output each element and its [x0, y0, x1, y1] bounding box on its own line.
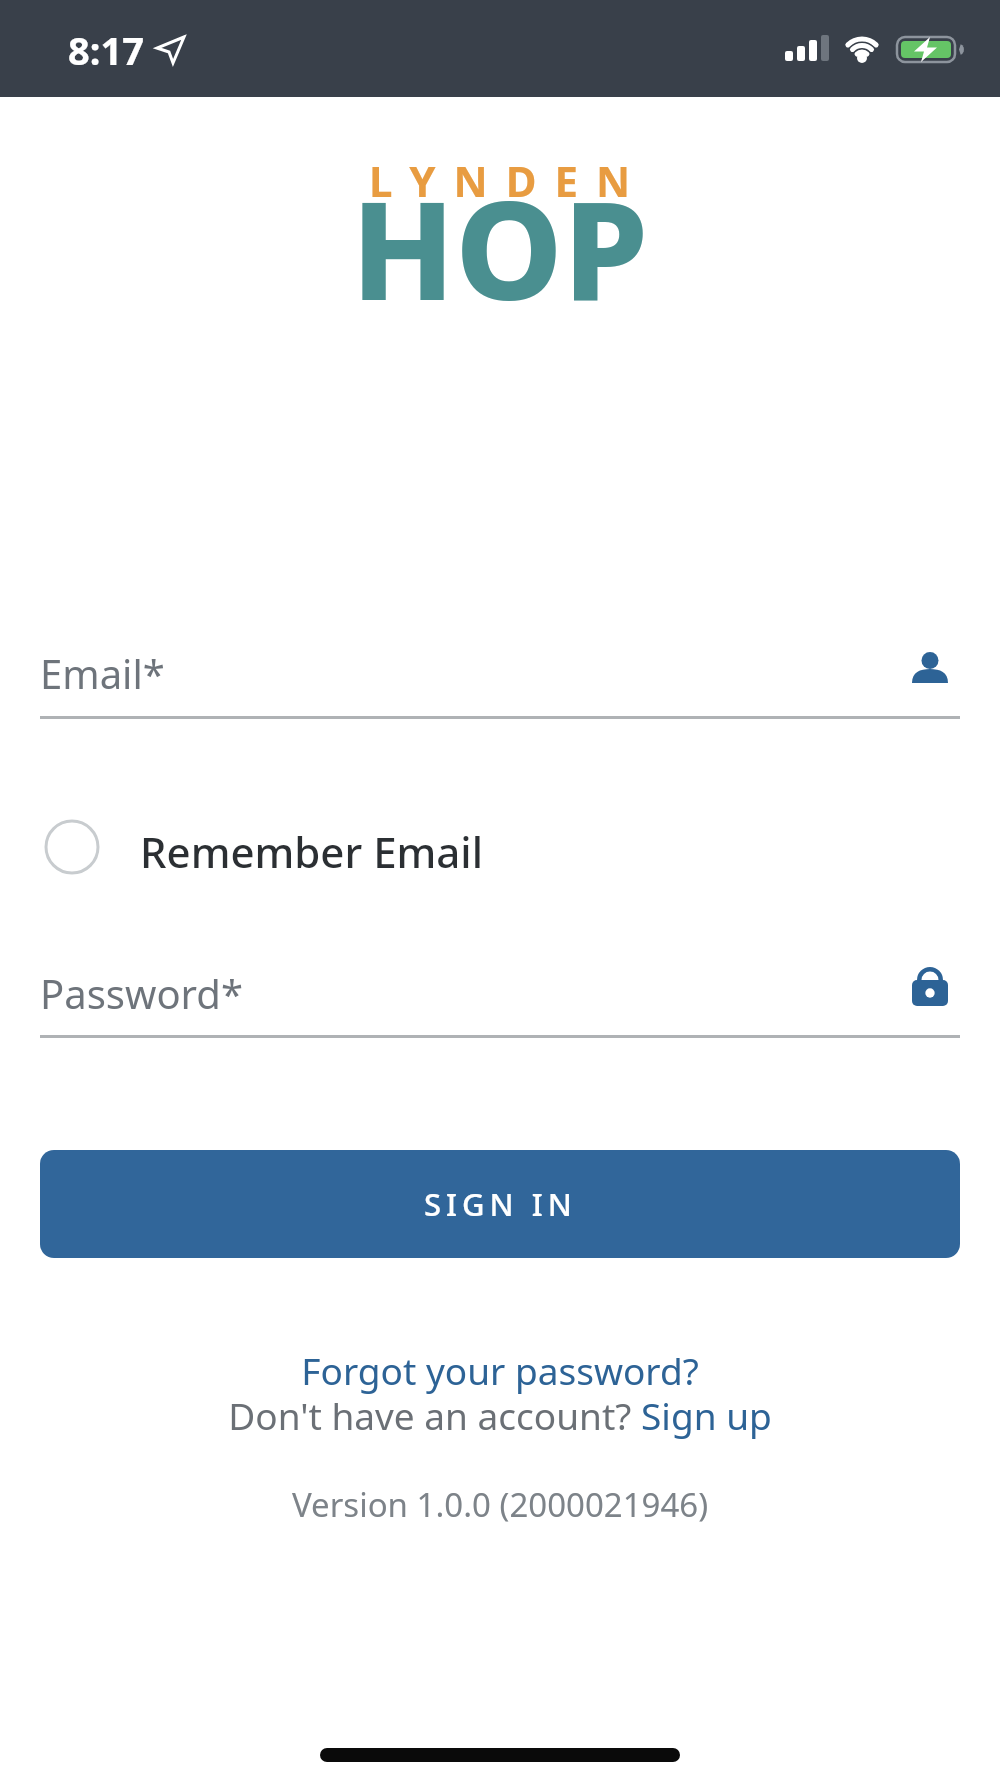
staticText: Email* [40, 646, 165, 700]
button[interactable]: Forgot your password? [0, 1345, 1000, 1395]
staticText: Forgot your password? [0, 1345, 1000, 1395]
button[interactable]: SIGN IN [40, 1150, 960, 1258]
staticText: Password* [40, 966, 243, 1020]
staticText: HOP [351, 155, 649, 340]
staticText: 8:17 [68, 24, 144, 76]
button[interactable]: Don't have an account? Sign up [0, 1390, 1000, 1440]
staticText: Don't have an account? Sign up [0, 1390, 1000, 1440]
staticText: SIGN IN [424, 1183, 577, 1225]
staticText: Version 1.0.0 (2000021946) [0, 1482, 1000, 1527]
button[interactable]: Password* [40, 948, 960, 1038]
button[interactable]: Email* [40, 630, 960, 720]
button[interactable]: Remember Email [40, 810, 500, 884]
staticText: Remember Email [140, 823, 484, 880]
staticText: LYNDEN [369, 152, 649, 209]
